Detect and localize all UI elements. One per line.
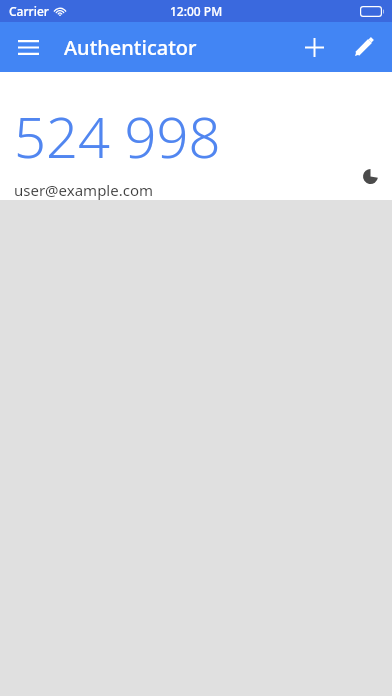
button[interactable]: Refresh countdown — [355, 161, 385, 191]
staticText: Authenticator — [64, 34, 197, 61]
staticText: 524 998 — [14, 98, 221, 174]
staticText: Carrier — [9, 3, 49, 19]
staticText: 12:00 PM — [170, 3, 223, 19]
staticText: user@example.com — [14, 180, 154, 200]
button[interactable]: 524 998 — [0, 72, 392, 200]
button[interactable]: Menu — [6, 25, 50, 69]
button[interactable]: Add account — [292, 25, 336, 69]
button[interactable]: Edit — [342, 25, 386, 69]
